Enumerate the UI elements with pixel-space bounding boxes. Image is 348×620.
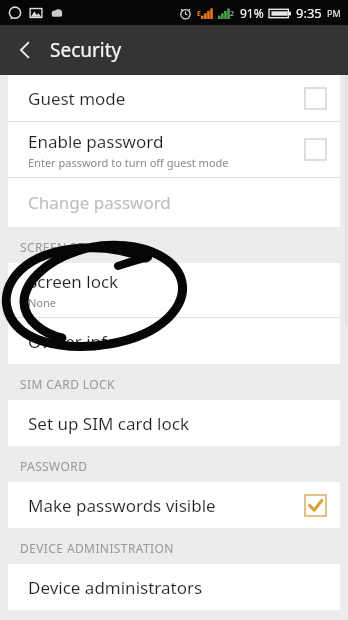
staticText: Screen lock bbox=[28, 270, 119, 293]
staticText: PM bbox=[327, 7, 341, 19]
staticText: E bbox=[197, 9, 201, 19]
staticText: Make passwords visible bbox=[28, 494, 216, 517]
staticText: Guest mode bbox=[28, 87, 126, 110]
staticText: Device administrators bbox=[28, 576, 203, 599]
button[interactable]: Make passwords visible bbox=[8, 482, 340, 528]
staticText: Set up SIM card lock bbox=[28, 412, 189, 435]
staticText: Change password bbox=[28, 191, 171, 214]
staticText: Enter password to turn off guest mode bbox=[28, 155, 229, 170]
staticText: None bbox=[28, 295, 57, 310]
staticText: 91% bbox=[240, 5, 264, 21]
button[interactable]: Guest mode bbox=[8, 75, 340, 121]
staticText: SIM CARD LOCK bbox=[20, 376, 115, 392]
staticText: PASSWORD bbox=[20, 458, 88, 474]
button[interactable]: Back bbox=[0, 25, 50, 75]
staticText: Enable password bbox=[28, 130, 164, 153]
staticText: 2 bbox=[230, 9, 235, 19]
button[interactable]: Device administrators bbox=[8, 564, 340, 610]
staticText: Owner info bbox=[28, 330, 118, 353]
button[interactable]: Change password bbox=[8, 178, 340, 227]
button[interactable]: Screen lock bbox=[8, 263, 340, 317]
staticText: Security bbox=[50, 37, 122, 63]
button[interactable]: Enable password bbox=[8, 122, 340, 177]
staticText: SCREEN SECURITY bbox=[20, 239, 128, 255]
staticText: DEVICE ADMINISTRATION bbox=[20, 540, 174, 556]
staticText: 9:35 bbox=[296, 4, 322, 22]
button[interactable]: Owner info bbox=[8, 318, 340, 364]
button[interactable]: Set up SIM card lock bbox=[8, 400, 340, 446]
